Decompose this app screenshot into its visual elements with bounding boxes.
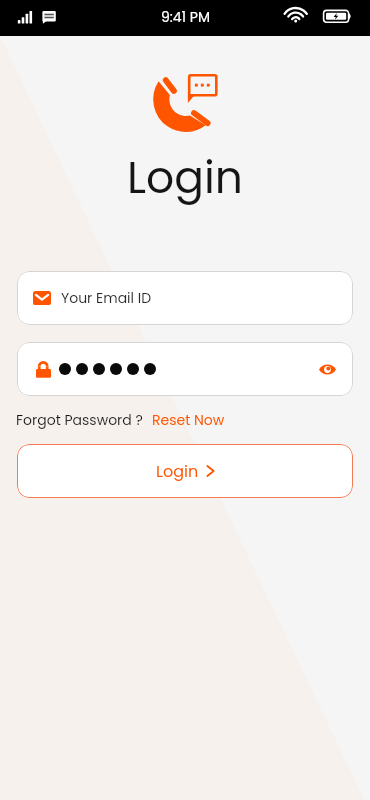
staticText: Login [0,147,370,209]
staticText: Reset Now [152,410,225,430]
button[interactable]: Login [17,444,353,498]
staticText: 9:41 PM [161,7,210,27]
staticText: Login [156,460,199,482]
button[interactable]: Reset Now [152,410,225,430]
button[interactable]: Show password [17,342,353,396]
staticText: Your Email ID [61,288,152,308]
button[interactable]: Show password [314,356,340,382]
staticText: Forgot Password ? [16,410,143,430]
button[interactable]: Your Email ID [17,271,353,325]
